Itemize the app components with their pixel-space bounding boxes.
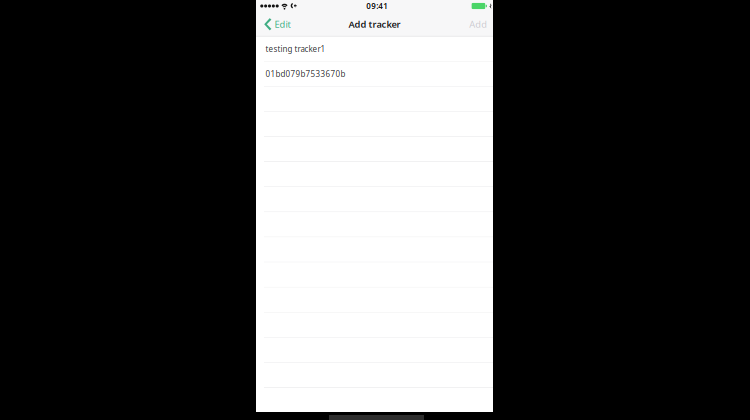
button[interactable]: testing tracker1 — [256, 36, 493, 62]
staticText: 09:41 — [366, 1, 388, 11]
button[interactable]: 01bd079b7533670b — [256, 62, 493, 87]
button[interactable]: Add — [463, 12, 493, 36]
staticText: Add — [469, 18, 487, 30]
staticText: 01bd079b7533670b — [265, 69, 345, 79]
staticText: Add tracker — [348, 18, 400, 30]
button[interactable]: Edit — [256, 12, 297, 36]
staticText: testing tracker1 — [265, 43, 325, 54]
staticText: Edit — [275, 18, 291, 30]
